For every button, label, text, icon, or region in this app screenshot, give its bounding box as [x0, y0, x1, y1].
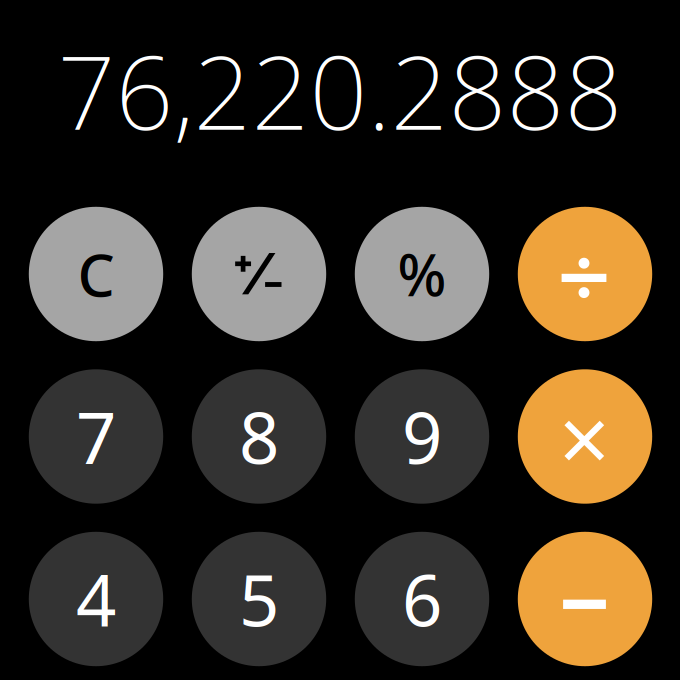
- button[interactable]: 6: [355, 532, 489, 666]
- button[interactable]: Divide: [518, 207, 652, 341]
- button[interactable]: Minus: [518, 532, 652, 666]
- button[interactable]: 5: [192, 532, 326, 666]
- button[interactable]: Plus minus: [192, 207, 326, 341]
- staticText: 9: [402, 390, 442, 483]
- staticText: 76,220.2888: [57, 23, 622, 158]
- staticText: %: [397, 236, 446, 312]
- staticText: 8: [239, 390, 279, 483]
- staticText: 4: [76, 552, 116, 646]
- staticText: 5: [239, 552, 279, 646]
- button[interactable]: 4: [29, 532, 163, 666]
- button[interactable]: C: [29, 207, 163, 341]
- button[interactable]: 7: [29, 369, 163, 504]
- staticText: 7: [76, 390, 116, 483]
- button[interactable]: 8: [192, 369, 326, 504]
- button[interactable]: %: [355, 207, 489, 341]
- button[interactable]: Multiply: [518, 369, 652, 504]
- staticText: 6: [402, 552, 442, 646]
- staticText: C: [77, 235, 114, 313]
- button[interactable]: 9: [355, 369, 489, 504]
